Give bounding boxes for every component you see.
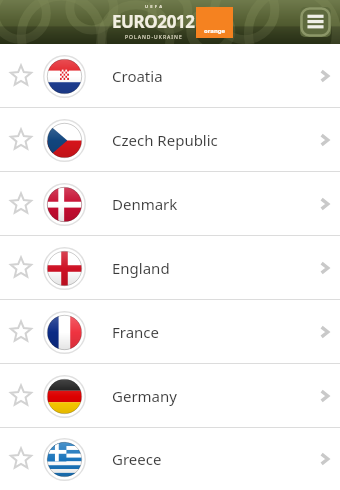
button[interactable]: Favorite Germany bbox=[0, 364, 340, 427]
staticText: Denmark bbox=[112, 194, 178, 214]
staticText: England bbox=[112, 258, 170, 278]
button[interactable]: Favorite England bbox=[0, 236, 340, 299]
button[interactable]: Favorite Greece bbox=[0, 428, 340, 490]
button[interactable]: Favorite France bbox=[0, 300, 340, 363]
staticText: Germany bbox=[112, 386, 177, 406]
staticText: orange bbox=[204, 27, 226, 35]
button[interactable]: Favorite France bbox=[0, 300, 42, 363]
staticText: Greece bbox=[112, 449, 162, 469]
button[interactable]: Favorite Denmark bbox=[0, 172, 340, 235]
button[interactable]: Favorite Croatia bbox=[0, 44, 340, 107]
staticText: France bbox=[112, 322, 160, 342]
button[interactable]: Favorite Greece bbox=[0, 428, 42, 490]
button[interactable]: Favorite Denmark bbox=[0, 172, 42, 235]
button[interactable]: Favorite Czech Republic bbox=[0, 108, 340, 171]
button[interactable]: Favorite England bbox=[0, 236, 42, 299]
staticText: Czech Republic bbox=[112, 130, 218, 150]
button[interactable]: Menu bbox=[300, 7, 331, 37]
staticText: POLAND-UKRAINE bbox=[125, 34, 183, 41]
button[interactable]: Favorite Croatia bbox=[0, 44, 42, 107]
staticText: U E F A bbox=[145, 4, 163, 9]
staticText: Croatia bbox=[112, 66, 163, 86]
button[interactable]: Favorite Czech Republic bbox=[0, 108, 42, 171]
staticText: EURO2012 bbox=[112, 10, 195, 33]
button[interactable]: Favorite Germany bbox=[0, 364, 42, 427]
